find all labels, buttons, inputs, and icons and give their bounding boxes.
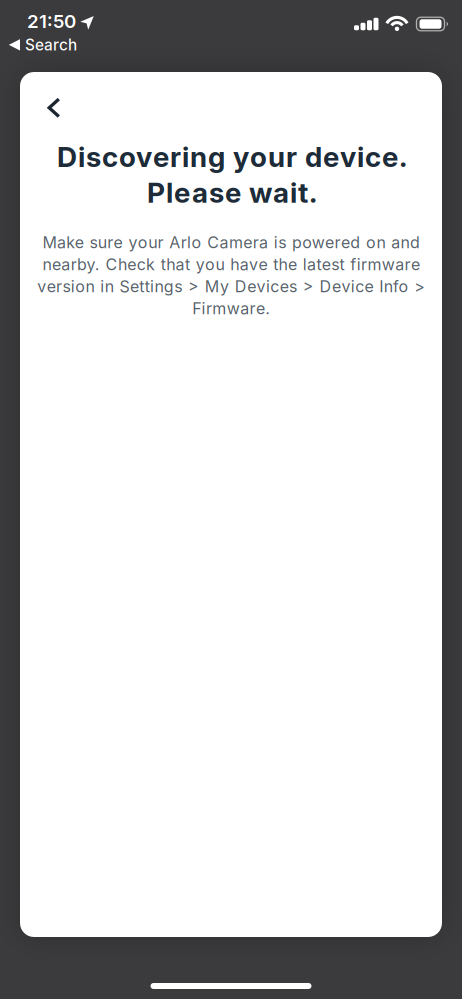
staticText: Make sure your Arlo Camera is powered on… bbox=[37, 231, 425, 319]
staticText: 21:50 bbox=[27, 10, 76, 33]
staticText: Discovering your device. Please wait. bbox=[56, 139, 406, 210]
button[interactable]: Search bbox=[0, 36, 77, 54]
button[interactable] bbox=[39, 90, 69, 126]
staticText: Search bbox=[25, 36, 77, 54]
